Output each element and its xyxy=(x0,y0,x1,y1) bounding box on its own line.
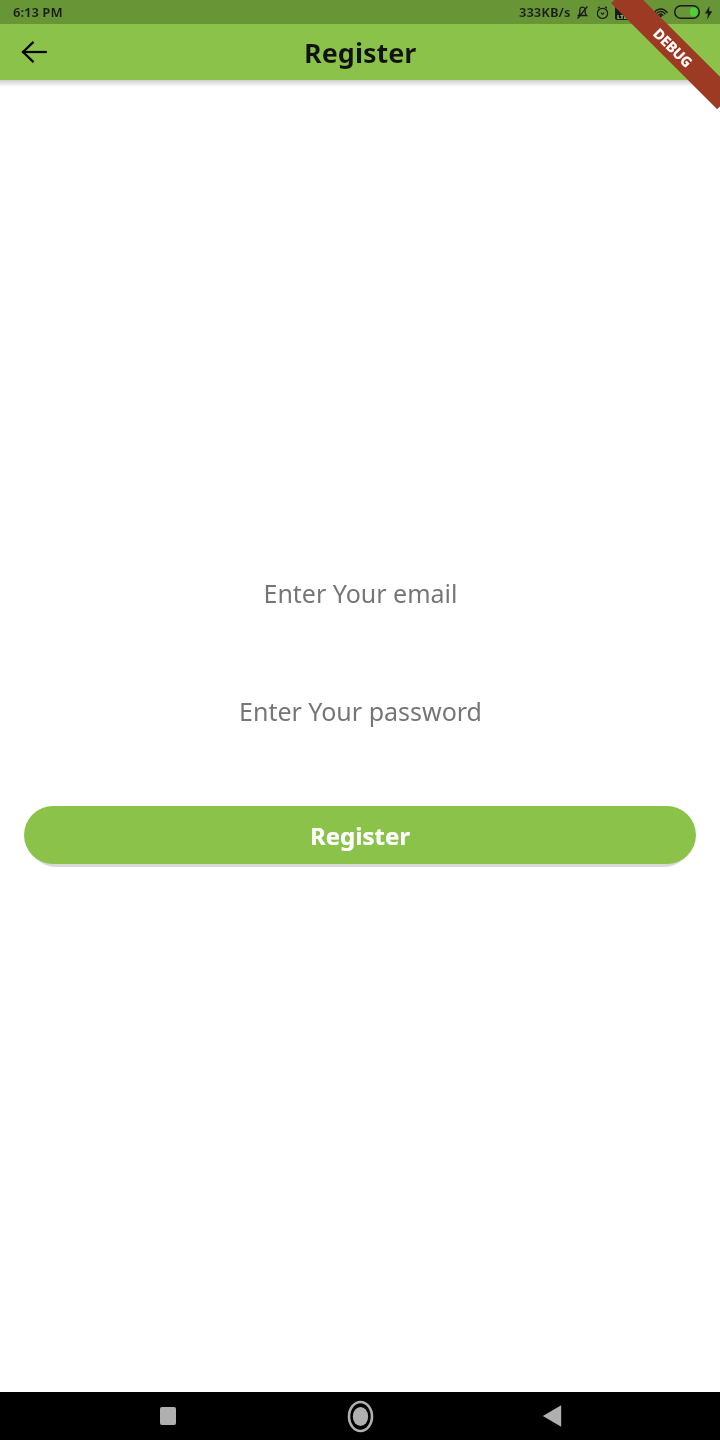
button[interactable]: Home xyxy=(336,1392,384,1440)
staticText: 6:13 PM xyxy=(13,3,63,21)
button[interactable]: Recent apps xyxy=(144,1392,192,1440)
staticText: Enter Your email xyxy=(263,576,458,610)
staticText: Vo xyxy=(619,5,627,13)
staticText: 333KB/s xyxy=(519,3,571,21)
button[interactable]: Enter Your email xyxy=(0,573,720,613)
staticText: LTE xyxy=(617,13,628,20)
button[interactable]: Enter Your password xyxy=(0,691,720,731)
staticText: Register xyxy=(310,819,410,852)
staticText: Enter Your password xyxy=(239,694,482,728)
button[interactable]: Register xyxy=(24,806,696,864)
staticText: Register xyxy=(304,34,417,71)
staticText: DEBUG xyxy=(649,24,697,72)
button[interactable]: Back xyxy=(528,1392,576,1440)
button[interactable]: Back xyxy=(10,28,58,76)
